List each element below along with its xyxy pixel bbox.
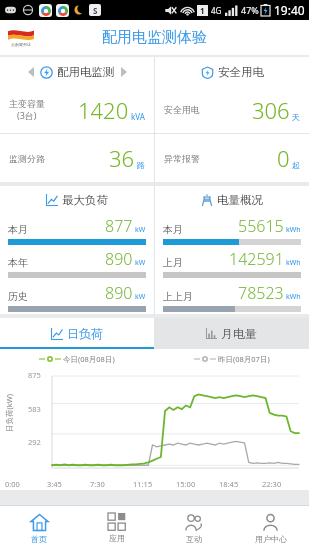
button[interactable]: 历史 [0,280,154,314]
staticText: 月电量 [221,326,257,341]
button[interactable]: 首页 [0,506,78,550]
button[interactable]: 本月 [155,213,309,246]
staticText: 18:45 [219,479,262,489]
staticText: 用户中心 [255,534,287,544]
other: 首页 [30,513,49,532]
staticText: 142591 [229,248,284,270]
staticText: kWh [286,292,301,302]
button[interactable]: 日负荷 [0,318,154,349]
staticText: 0 [277,143,290,173]
staticText: 15:00 [176,479,219,489]
staticText: 本月 [8,223,28,236]
staticText: 11:15 [133,479,176,489]
button[interactable]: 用户中心 [232,506,309,550]
staticText: kWh [286,225,301,235]
staticText: S [93,5,98,16]
staticText: 890 [105,248,133,270]
staticText: 875 [28,370,41,380]
staticText: 云南耀邦达 [11,42,31,47]
staticText: 首页 [31,534,47,544]
staticText: 安全用电 [164,104,200,115]
staticText: 互动 [186,534,202,544]
staticText: kW [135,258,146,268]
staticText: 0:00 [5,479,47,489]
staticText: 4G [211,5,222,16]
staticText: 昨日(08月07日) [218,354,270,364]
staticText: 上月 [163,256,183,269]
staticText: 22:30 [262,479,305,489]
staticText: 配用电监测 [57,65,115,79]
staticText: 47% [241,4,259,16]
staticText: 19:40 [274,2,305,18]
staticText: 天 [292,112,300,122]
staticText: 今日(08月08日) [63,354,115,364]
staticText: 292 [28,437,41,447]
button[interactable]: 本年 [0,246,154,280]
staticText: 78523 [238,282,284,304]
staticText: 主变容量 [9,98,45,109]
button[interactable]: 月电量 [154,318,309,349]
staticText: 配用电监测体验 [102,28,207,47]
button[interactable]: 异常报警 [155,134,309,182]
staticText: 上上月 [163,290,193,303]
staticText: 日负荷(kW) [4,394,14,432]
staticText: kWh [286,258,301,268]
staticText: 1 [200,5,205,16]
other: 应用 [108,513,126,531]
staticText: (3台) [17,109,37,121]
button[interactable]: 互动 [155,506,232,550]
staticText: 1420 [78,95,129,125]
staticText: 本年 [8,256,28,269]
staticText: 7:30 [90,479,133,489]
other: 用户中心 [261,513,280,532]
button[interactable]: 监测分路 [0,134,154,182]
button[interactable]: 上月 [155,246,309,280]
staticText: 电量概况 [217,193,263,207]
staticText: kVA [131,111,145,122]
other: 互动 [184,513,203,532]
staticText: 监测分路 [9,153,45,164]
staticText: 877 [105,215,133,237]
staticText: 3:45 [47,479,90,489]
staticText: 异常报警 [164,153,200,164]
button[interactable]: 主变容量 [0,86,154,133]
staticText: 安全用电 [218,65,264,79]
staticText: 日负荷 [67,326,103,341]
staticText: 55615 [238,215,284,237]
staticText: 路 [137,160,145,170]
staticText: 起 [292,160,300,170]
staticText: 36 [109,143,135,173]
staticText: 历史 [8,290,28,303]
button[interactable]: 上上月 [155,280,309,314]
button[interactable]: 应用 [78,506,155,550]
staticText: 本月 [163,223,183,236]
staticText: 最大负荷 [62,193,108,207]
staticText: kW [135,225,146,235]
staticText: 应用 [109,533,125,543]
staticText: 890 [105,282,133,304]
staticText: 306 [252,95,290,125]
staticText: kW [135,292,146,302]
staticText: 583 [28,404,41,414]
button[interactable]: 本月 [0,213,154,246]
button[interactable]: 安全用电 [155,86,309,133]
